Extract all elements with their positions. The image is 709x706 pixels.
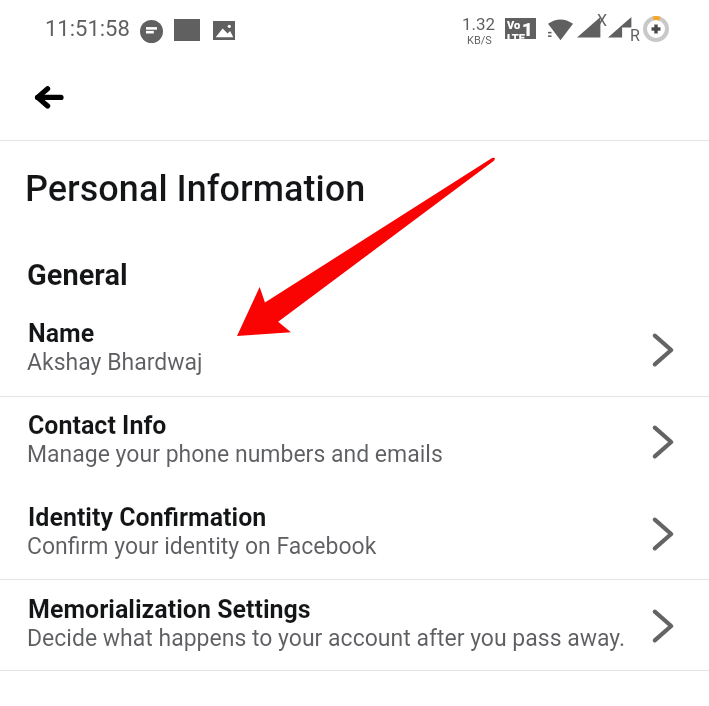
staticText: Memorialization Settings (28, 595, 311, 624)
button[interactable]: Name (0, 304, 709, 396)
button[interactable]: Back (21, 73, 77, 129)
staticText: Akshay Bhardwaj (27, 349, 203, 376)
button[interactable]: Identity Confirmation (0, 488, 709, 580)
staticText: Personal Information (25, 168, 366, 210)
staticText: Manage your phone numbers and emails (27, 441, 443, 468)
staticText: KB/S (467, 34, 492, 47)
button[interactable]: Open Identity Confirmation (627, 498, 709, 570)
staticText: 11:51:58 (45, 16, 130, 42)
staticText: Contact Info (28, 411, 167, 440)
staticText: Decide what happens to your account afte… (27, 625, 626, 652)
staticText: 1.32 (462, 14, 496, 34)
staticText: X (597, 11, 608, 30)
staticText: Vo (507, 19, 521, 32)
button[interactable]: Open Memorialization Settings (627, 590, 709, 662)
button[interactable]: Contact Info (0, 396, 709, 488)
staticText: R (630, 26, 640, 45)
staticText: 1 (522, 18, 533, 39)
staticText: Confirm your identity on Facebook (27, 533, 377, 560)
staticText: LTE (507, 32, 525, 40)
button[interactable]: Open Contact Info (627, 406, 709, 478)
button[interactable]: Open Name (627, 314, 709, 386)
staticText: General (27, 258, 128, 292)
button[interactable]: Memorialization Settings (0, 580, 709, 672)
staticText: Identity Confirmation (28, 503, 267, 532)
staticText: Name (28, 319, 95, 348)
